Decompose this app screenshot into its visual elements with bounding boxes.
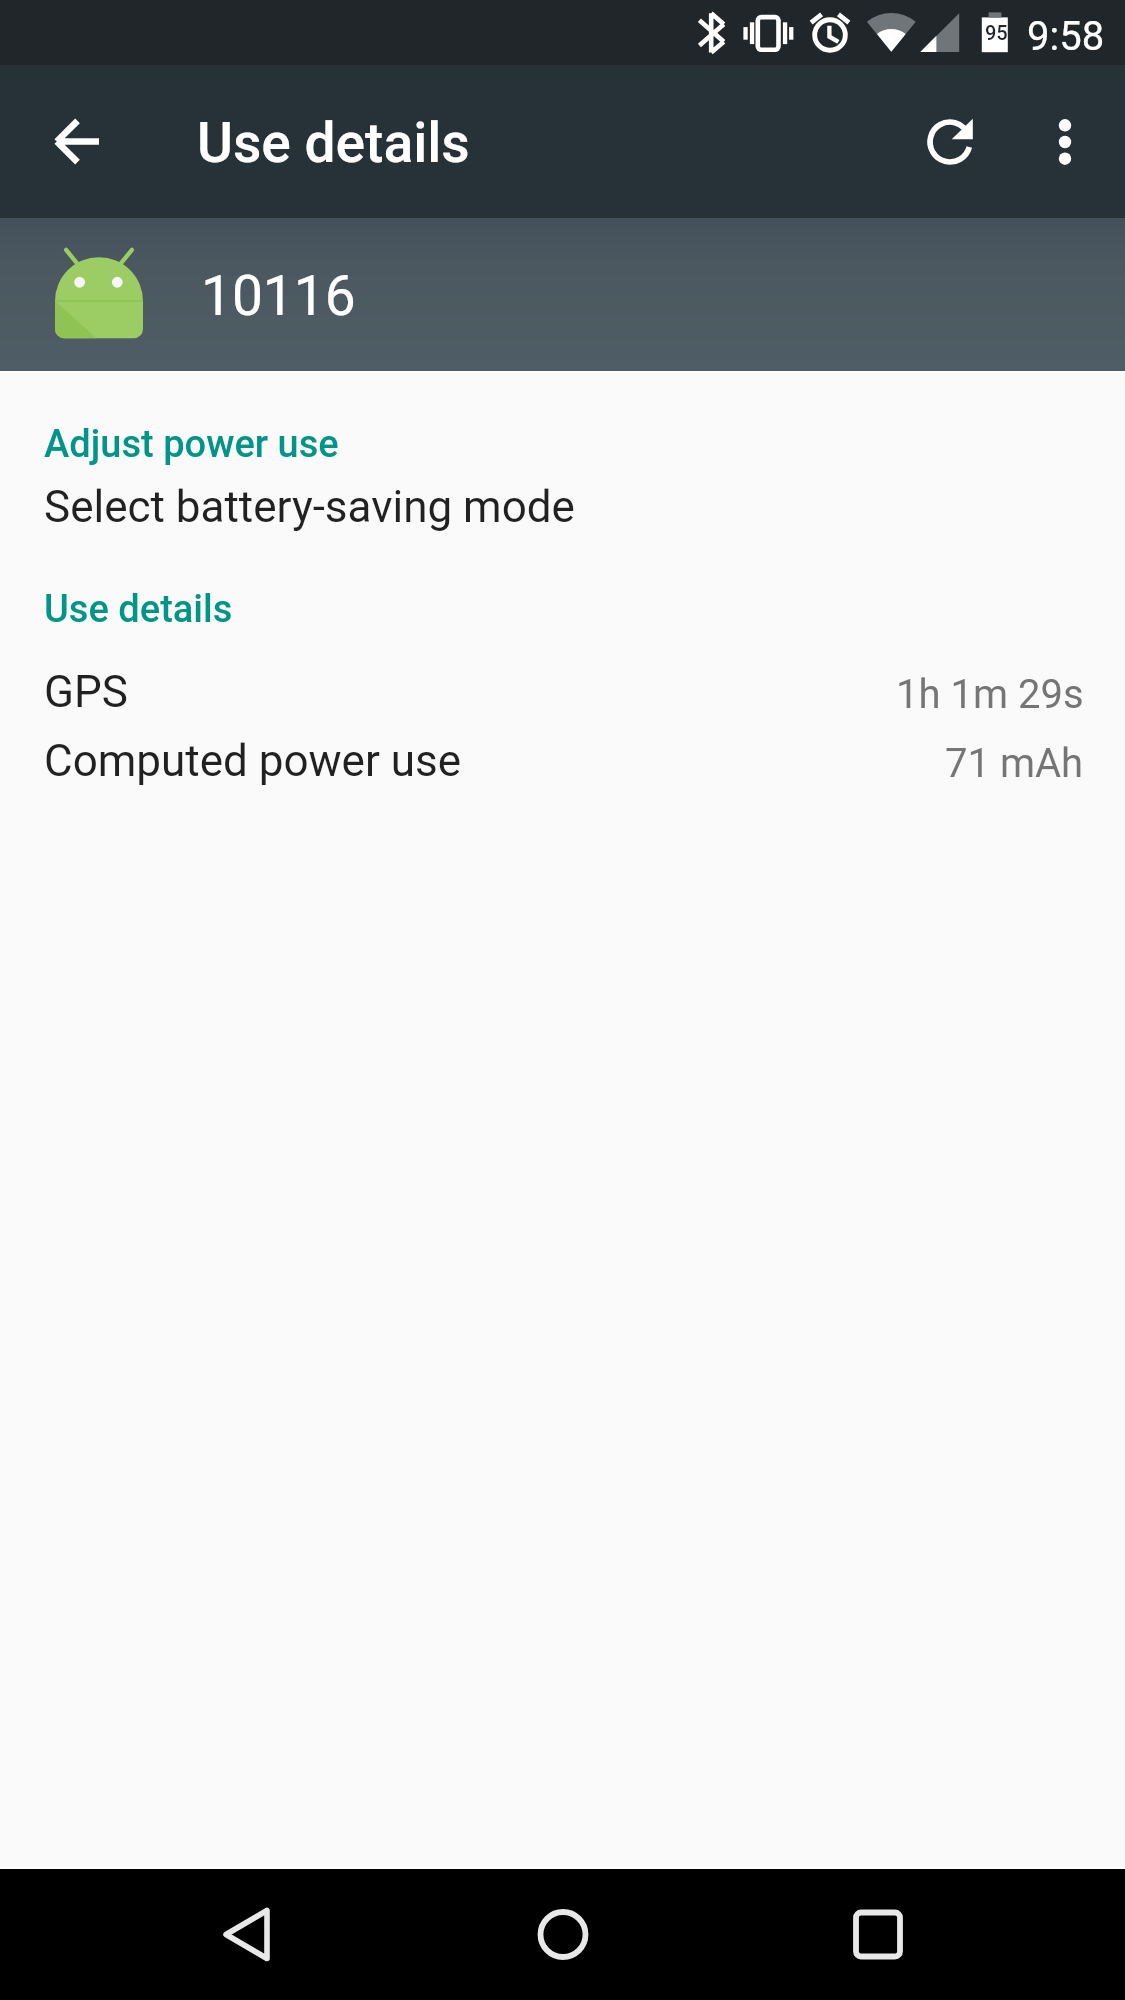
staticText: 9:58 — [1027, 13, 1105, 60]
button[interactable]: Recent apps — [808, 1869, 948, 2000]
button[interactable]: More options — [1015, 92, 1115, 192]
staticText: Computed power use — [44, 735, 462, 787]
button[interactable]: Refresh — [900, 92, 1000, 192]
staticText: 95 — [985, 21, 1008, 44]
staticText: Select battery-saving mode — [44, 481, 575, 533]
button[interactable]: GPS — [0, 657, 1125, 726]
button[interactable]: Computed power use — [0, 726, 1125, 795]
staticText: GPS — [44, 666, 128, 718]
staticText: 1h 1m 29s — [896, 671, 1084, 718]
staticText: 10116 — [201, 264, 356, 328]
staticText: Use details — [197, 111, 470, 175]
button[interactable]: Adjust power use — [0, 373, 1125, 553]
button[interactable]: Back — [177, 1869, 317, 2000]
button[interactable]: Navigate up — [0, 65, 146, 218]
staticText: Use details — [44, 587, 233, 632]
button[interactable]: Home — [493, 1869, 633, 2000]
staticText: 71 mAh — [945, 740, 1084, 787]
staticText: Adjust power use — [44, 422, 339, 467]
